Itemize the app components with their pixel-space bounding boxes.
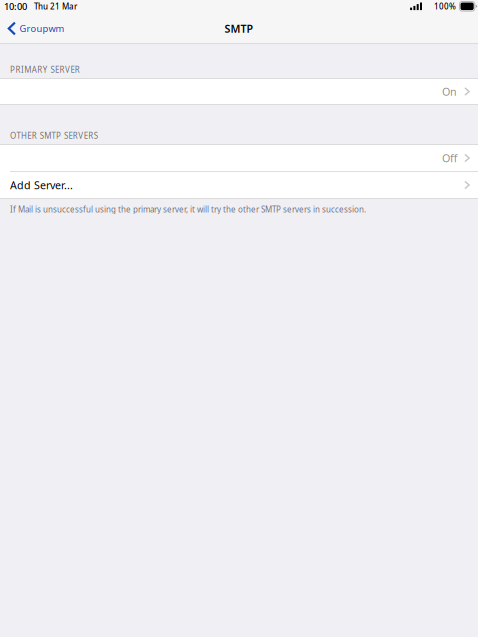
staticText: 10:00: [4, 0, 27, 12]
staticText: If Mail is unsuccessful using the primar…: [10, 204, 366, 215]
button[interactable]: Off: [0, 145, 478, 171]
staticText: Thu 21 Mar: [34, 1, 77, 12]
button[interactable]: On: [0, 79, 478, 104]
staticText: Add Server...: [10, 178, 73, 192]
button[interactable]: Groupwm: [0, 17, 73, 42]
staticText: Off: [442, 151, 457, 165]
staticText: 100%: [434, 1, 456, 12]
staticText: SMTP: [224, 21, 253, 36]
button[interactable]: Add Server...: [0, 172, 478, 198]
staticText: On: [442, 84, 457, 99]
staticText: OTHER SMTP SERVERS: [10, 130, 98, 141]
staticText: Groupwm: [20, 22, 65, 35]
staticText: PRIMARY SERVER: [10, 64, 80, 75]
